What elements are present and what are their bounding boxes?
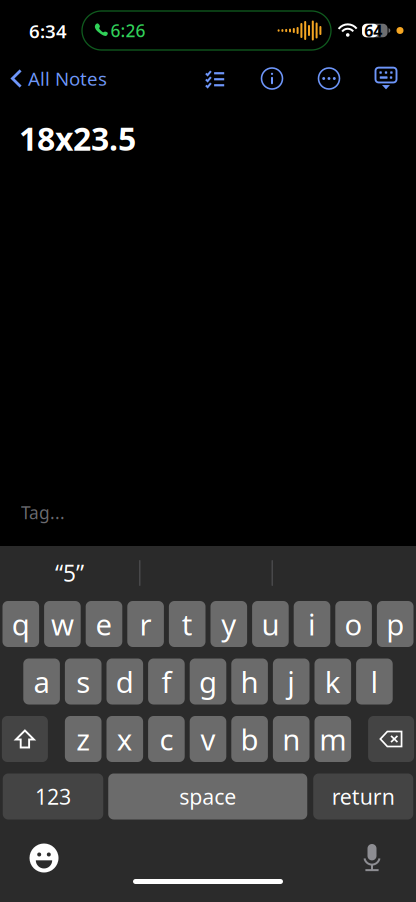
- button[interactable]: return: [313, 773, 413, 819]
- button[interactable]: Dictation: [350, 841, 394, 875]
- button[interactable]: Checklist: [193, 56, 237, 100]
- staticText: t: [182, 604, 193, 643]
- staticText: g: [199, 662, 217, 701]
- staticText: b: [241, 719, 259, 758]
- button[interactable]: i: [294, 601, 330, 647]
- staticText: e: [95, 604, 112, 643]
- staticText: x: [117, 719, 133, 758]
- button[interactable]: n: [273, 716, 309, 762]
- button[interactable]: p: [377, 601, 413, 647]
- button[interactable]: c: [148, 716, 185, 762]
- staticText: o: [345, 604, 363, 643]
- button[interactable]: w: [44, 601, 81, 647]
- button[interactable]: q: [2, 601, 39, 647]
- staticText: 6:34: [29, 19, 67, 43]
- staticText: Tag...: [21, 501, 65, 524]
- button[interactable]: j: [273, 658, 309, 704]
- staticText: m: [319, 719, 346, 758]
- button[interactable]: k: [314, 658, 351, 704]
- staticText: s: [76, 662, 90, 701]
- staticText: 18x23.5: [19, 117, 136, 159]
- staticText: q: [12, 604, 30, 643]
- button[interactable]: u: [252, 601, 289, 647]
- staticText: n: [282, 719, 300, 758]
- staticText: space: [179, 782, 236, 811]
- button[interactable]: Hide Keyboard: [364, 56, 408, 100]
- staticText: j: [287, 662, 295, 701]
- staticText: 6:26: [111, 19, 146, 42]
- button[interactable]: s: [65, 658, 101, 704]
- staticText: i: [308, 604, 316, 643]
- staticText: c: [159, 719, 173, 758]
- button[interactable]: h: [231, 658, 268, 704]
- button[interactable]: “5”: [0, 546, 139, 600]
- staticText: f: [161, 662, 171, 701]
- button[interactable]: f: [148, 658, 185, 704]
- button[interactable]: v: [190, 716, 226, 762]
- staticText: a: [34, 662, 50, 701]
- staticText: l: [370, 662, 378, 701]
- staticText: u: [261, 604, 279, 643]
- button[interactable]: More: [307, 56, 351, 100]
- button[interactable]: a: [23, 658, 60, 704]
- button[interactable]: b: [231, 716, 268, 762]
- staticText: w: [51, 604, 74, 643]
- button[interactable]: t: [169, 601, 205, 647]
- staticText: k: [325, 662, 341, 701]
- button[interactable]: e: [86, 601, 122, 647]
- button[interactable]: g: [190, 658, 226, 704]
- staticText: 123: [35, 782, 71, 811]
- staticText: z: [76, 719, 90, 758]
- staticText: v: [200, 719, 215, 758]
- staticText: 64: [364, 20, 382, 41]
- button[interactable]: y: [210, 601, 247, 647]
- staticText: r: [140, 604, 152, 643]
- button[interactable]: x: [106, 716, 143, 762]
- button[interactable]: d: [106, 658, 143, 704]
- staticText: y: [221, 604, 236, 643]
- staticText: “5”: [55, 558, 84, 588]
- button[interactable]: Delete: [368, 716, 414, 762]
- button[interactable]: Info: [250, 56, 294, 100]
- button[interactable]: z: [65, 716, 101, 762]
- button[interactable]: l: [356, 658, 393, 704]
- staticText: d: [116, 662, 134, 701]
- button[interactable]: o: [335, 601, 372, 647]
- staticText: p: [386, 604, 404, 643]
- button[interactable]: 123: [3, 773, 103, 819]
- button[interactable]: Shift: [2, 716, 48, 762]
- button[interactable]: r: [127, 601, 164, 647]
- staticText: h: [241, 662, 259, 701]
- button[interactable]: All Notes: [0, 56, 107, 100]
- button[interactable]: m: [314, 716, 351, 762]
- button[interactable]: space: [108, 773, 307, 819]
- staticText: All Notes: [28, 66, 107, 91]
- button[interactable]: Emoji: [22, 841, 66, 875]
- staticText: return: [332, 782, 395, 811]
